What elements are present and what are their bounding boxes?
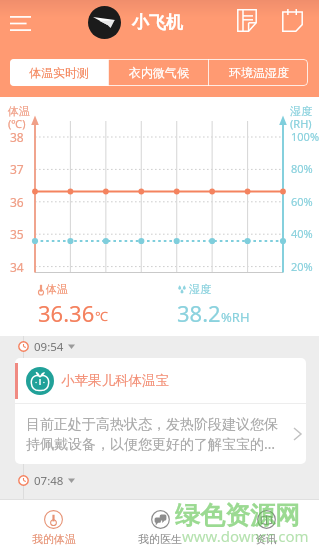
staticText: 小飞机 — [132, 12, 183, 33]
staticText: 07:48 — [34, 473, 64, 489]
button[interactable]: 小苹果儿科体温宝 — [15, 358, 306, 464]
staticText: 环境温湿度 — [229, 65, 289, 80]
button[interactable]: Menu — [1, 4, 39, 42]
staticText: 09:54 — [34, 339, 64, 355]
staticText: (℃) — [8, 116, 26, 131]
staticText: 资讯 — [255, 532, 277, 546]
staticText: 60% — [291, 194, 313, 209]
staticText: 绿色资源网 — [175, 500, 300, 531]
staticText: 我的体温 — [32, 532, 76, 546]
staticText: 37 — [10, 161, 24, 177]
staticText: ℃ — [95, 307, 108, 325]
staticText: 36.36 — [38, 298, 95, 328]
staticText: 湿度 — [189, 282, 211, 296]
staticText: 36 — [10, 194, 24, 210]
staticText: 20% — [291, 259, 313, 274]
staticText: 34 — [10, 259, 24, 275]
staticText: 体温 — [8, 104, 30, 118]
staticText: 80% — [291, 161, 313, 176]
staticText: 100% — [291, 129, 319, 144]
staticText: 体温实时测 — [29, 65, 89, 80]
button[interactable]: 体温实时测 — [10, 59, 108, 86]
staticText: 40% — [291, 226, 313, 241]
staticText: 湿度 — [290, 104, 312, 118]
staticText: %RH — [221, 308, 250, 326]
staticText: 我的医生 — [138, 532, 182, 546]
staticText: 小苹果儿科体温宝 — [61, 372, 169, 389]
button[interactable]: Notes — [232, 5, 262, 35]
button[interactable]: 我的医生 — [107, 503, 213, 546]
staticText: 体温 — [46, 282, 68, 296]
button[interactable]: 我的体温 — [0, 503, 107, 546]
button[interactable]: 07:48 — [18, 472, 319, 489]
staticText: 38.2 — [177, 298, 221, 328]
staticText: 38 — [10, 129, 24, 145]
button[interactable]: Calendar — [277, 5, 307, 35]
staticText: 衣内微气候 — [129, 65, 189, 80]
button[interactable]: 09:54 — [18, 338, 319, 355]
button[interactable]: 资讯 — [213, 503, 319, 546]
staticText: 35 — [10, 226, 24, 242]
staticText: (RH) — [290, 116, 312, 131]
staticText: 目前正处于高热状态，发热阶段建议您保持佩戴设备，以便您更好的了解宝宝的… — [26, 416, 289, 453]
button[interactable]: 衣内微气候 — [109, 59, 208, 86]
button[interactable]: 环境温湿度 — [209, 59, 308, 86]
staticText: www.downcc.com — [182, 526, 309, 546]
